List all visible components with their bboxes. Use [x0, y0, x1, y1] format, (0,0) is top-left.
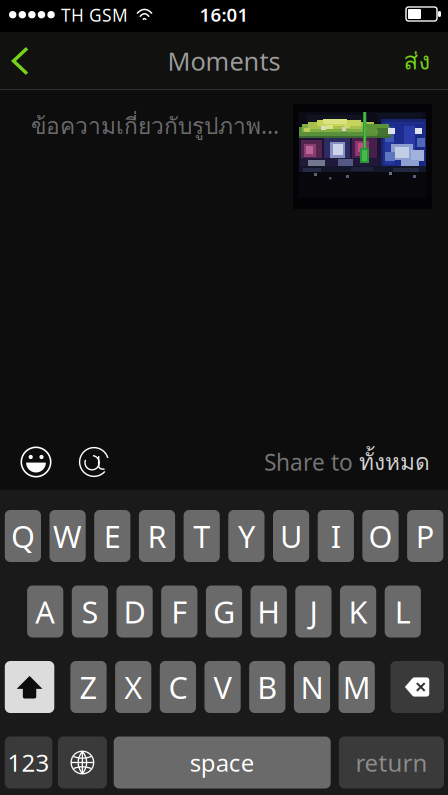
staticText: TH GSM	[61, 3, 128, 26]
button[interactable]: X	[115, 661, 151, 713]
button[interactable]: V	[204, 661, 241, 713]
button[interactable]: L	[385, 585, 421, 637]
button[interactable]: M	[339, 661, 375, 713]
staticText: 16:01	[199, 2, 248, 27]
button[interactable]: K	[340, 585, 376, 637]
button[interactable]: S	[72, 585, 108, 637]
button[interactable]: D	[116, 585, 153, 637]
button[interactable]: space	[114, 736, 331, 788]
staticText: B	[257, 667, 277, 707]
button[interactable]: 123	[5, 736, 52, 788]
button[interactable]: Next keyboard	[58, 736, 107, 788]
button[interactable]: Share to	[242, 437, 430, 487]
button[interactable]: H	[251, 585, 287, 637]
staticText: T	[193, 516, 210, 556]
button[interactable]: Delete	[390, 661, 444, 713]
staticText: ข้อความเกี่ยวกับรูปภาพ...	[31, 108, 279, 143]
button[interactable]: Back	[0, 32, 44, 90]
staticText: return	[355, 747, 427, 778]
staticText: space	[190, 747, 255, 778]
button[interactable]: Shift	[5, 661, 54, 713]
staticText: A	[35, 591, 55, 632]
staticText: 123	[7, 747, 49, 778]
staticText: R	[147, 516, 166, 556]
staticText: I	[331, 516, 341, 556]
button[interactable]: R	[139, 510, 175, 562]
staticText: Moments	[167, 44, 280, 78]
button[interactable]: T	[184, 510, 220, 562]
staticText: Z	[79, 667, 97, 707]
staticText: C	[168, 667, 187, 707]
button[interactable]: Mention	[69, 437, 119, 487]
staticText: N	[300, 667, 323, 707]
button[interactable]: I	[318, 510, 354, 562]
button[interactable]: N	[294, 661, 330, 713]
staticText: ทั้งหมด	[359, 444, 430, 479]
staticText: X	[124, 667, 142, 707]
button[interactable]: Emoji	[11, 437, 61, 487]
staticText: M	[343, 667, 371, 707]
staticText: O	[368, 516, 392, 556]
staticText: Y	[238, 516, 255, 556]
staticText: L	[395, 591, 411, 632]
staticText: ส่ง	[403, 42, 430, 80]
button[interactable]: B	[249, 661, 285, 713]
staticText: W	[53, 516, 82, 556]
button[interactable]: ส่ง	[386, 32, 448, 90]
button[interactable]: return	[339, 736, 444, 788]
staticText: V	[214, 667, 232, 707]
button[interactable]: O	[362, 510, 399, 562]
button[interactable]: Y	[228, 510, 264, 562]
button[interactable]: J	[295, 585, 331, 637]
staticText: K	[349, 591, 368, 632]
staticText: Share to	[264, 447, 353, 477]
staticText: S	[81, 591, 98, 632]
staticText: J	[309, 591, 317, 632]
button[interactable]: U	[273, 510, 309, 562]
staticText: H	[257, 591, 280, 632]
button[interactable]: E	[94, 510, 130, 562]
button[interactable]: Z	[70, 661, 107, 713]
staticText: F	[171, 591, 187, 632]
staticText: E	[104, 516, 121, 556]
button[interactable]: W	[49, 510, 86, 562]
staticText: U	[280, 516, 302, 556]
button[interactable]: G	[206, 585, 242, 637]
staticText: D	[124, 591, 146, 632]
staticText: G	[213, 591, 235, 632]
button[interactable]: A	[27, 585, 63, 637]
button[interactable]: C	[160, 661, 196, 713]
staticText: Q	[11, 516, 35, 556]
button[interactable]: F	[161, 585, 197, 637]
button[interactable]: P	[407, 510, 443, 562]
staticText: P	[416, 516, 435, 556]
button[interactable]: Q	[5, 510, 41, 562]
